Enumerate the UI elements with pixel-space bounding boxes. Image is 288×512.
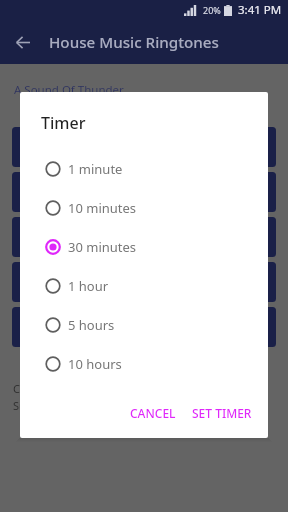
staticText: 5 hours — [68, 316, 115, 334]
staticText: Timer — [41, 112, 86, 134]
button[interactable] — [12, 217, 276, 257]
staticText: A Sound Of Thunder — [14, 82, 124, 98]
staticText: Cool Melody — [13, 381, 78, 396]
button[interactable]: 10 hours — [20, 344, 268, 383]
staticText: 1 minute — [68, 160, 123, 178]
staticText: 1 hour — [68, 277, 109, 295]
staticText: 10 hours — [68, 355, 122, 373]
button[interactable] — [12, 307, 276, 347]
staticText: House Music Ringtones — [49, 32, 219, 53]
button[interactable] — [12, 127, 276, 167]
staticText: 20% — [203, 4, 221, 16]
button[interactable]: 5 hours — [20, 305, 268, 344]
button[interactable] — [12, 262, 276, 302]
staticText: SET TIMER — [192, 405, 252, 421]
button[interactable]: 1 hour — [20, 266, 268, 305]
staticText: CANCEL — [130, 405, 176, 421]
staticText: Sunrise Beat — [13, 398, 78, 413]
button[interactable] — [12, 172, 276, 212]
button[interactable]: CANCEL — [122, 397, 184, 429]
staticText: 10 minutes — [68, 199, 137, 217]
button[interactable]: Back — [0, 20, 45, 64]
button[interactable]: 1 minute — [20, 149, 268, 188]
button[interactable]: SET TIMER — [184, 397, 260, 429]
staticText: 3:41 PM — [238, 2, 282, 18]
button[interactable]: 10 minutes — [20, 188, 268, 227]
button[interactable]: 30 minutes — [20, 227, 268, 266]
staticText: 30 minutes — [68, 238, 137, 256]
